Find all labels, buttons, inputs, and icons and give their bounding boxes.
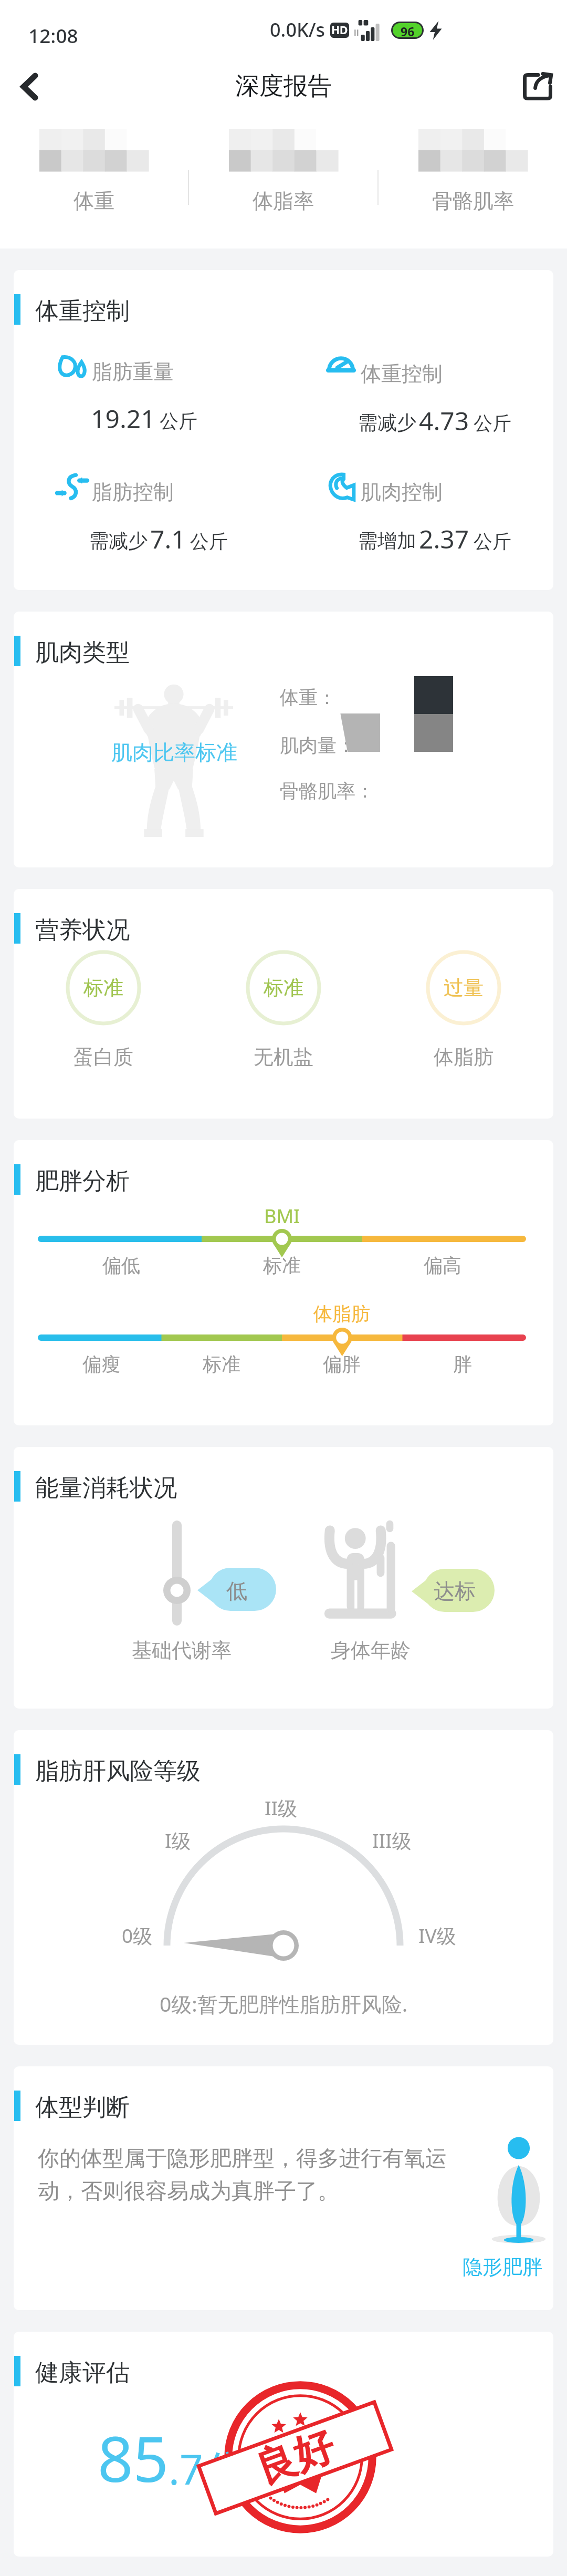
staticText: 需减少 — [358, 410, 416, 435]
staticText: 深度报告 — [235, 71, 332, 101]
button[interactable]: 体重 — [0, 116, 188, 249]
staticText: I级 — [165, 1827, 191, 1854]
button[interactable]: 过量 — [373, 950, 553, 1070]
button[interactable]: 骨骼肌率 — [379, 116, 567, 249]
staticText: 标准 — [264, 975, 303, 1000]
staticText: 健康评估 — [35, 2358, 130, 2388]
staticText: 4.73 — [419, 404, 469, 438]
staticText: 85 — [98, 2416, 169, 2500]
staticText: 你的体型属于隐形肥胖型，得多进行有氧运动，否则很容易成为真胖子了。 — [38, 2145, 458, 2205]
staticText: 12:08 — [28, 22, 78, 48]
staticText: 脂肪重量 — [92, 359, 174, 385]
staticText: 需增加 — [358, 529, 416, 553]
staticText: 体型判断 — [35, 2093, 130, 2123]
staticText: 低 — [226, 1578, 247, 1604]
staticText: 需减少 — [89, 529, 148, 553]
staticText: 标准 — [203, 1352, 240, 1376]
staticText: 隐形肥胖 — [463, 2254, 542, 2280]
staticText: 体脂肪 — [313, 1302, 370, 1326]
staticText: 肌肉类型 — [35, 638, 130, 668]
staticText: 能量消耗状况 — [35, 1473, 177, 1503]
staticText: 偏高 — [424, 1254, 461, 1277]
staticText: 无机盐 — [254, 1044, 313, 1070]
staticText: 胖 — [453, 1352, 472, 1376]
staticText: 体脂率 — [253, 188, 314, 214]
staticText: 偏瘦 — [82, 1352, 120, 1376]
staticText: 身体年龄 — [331, 1638, 411, 1663]
staticText: IV级 — [418, 1922, 456, 1949]
staticText: 体重： — [280, 686, 337, 709]
staticText: 肌肉控制 — [361, 479, 443, 505]
button[interactable]: 标准 — [193, 950, 373, 1070]
staticText: 体重控制 — [35, 296, 130, 326]
staticText: 7.1 — [150, 522, 186, 556]
staticText: 良好 — [249, 2420, 341, 2495]
staticText: 公斤 — [474, 530, 511, 553]
staticText: 偏胖 — [323, 1352, 361, 1376]
staticText: BMI — [264, 1203, 300, 1229]
staticText: 19.21 — [91, 401, 155, 436]
staticText: 标准 — [263, 1254, 301, 1277]
staticText: 脂肪控制 — [92, 479, 174, 505]
staticText: III级 — [372, 1827, 412, 1854]
button[interactable]: Back — [0, 58, 59, 116]
staticText: 骨骼肌率 — [432, 188, 514, 214]
staticText: 肌肉量： — [280, 733, 355, 757]
staticText: 公斤 — [160, 409, 197, 433]
staticText: 达标 — [434, 1578, 476, 1604]
staticText: 体重 — [73, 188, 114, 214]
staticText: 公斤 — [474, 411, 511, 435]
staticText: 过量 — [444, 975, 484, 1000]
staticText: 骨骼肌率： — [280, 779, 374, 803]
staticText: 2.37 — [419, 522, 469, 556]
staticText: 体脂肪 — [434, 1044, 493, 1070]
staticText: II级 — [265, 1794, 298, 1821]
staticText: HD — [331, 23, 348, 38]
staticText: 蛋白质 — [73, 1044, 133, 1070]
staticText: 肌肉比率标准 — [111, 739, 237, 765]
staticText: 营养状况 — [35, 915, 130, 945]
staticText: 体重控制 — [361, 361, 443, 387]
staticText: 脂肪肝风险等级 — [35, 1756, 201, 1786]
staticText: 基础代谢率 — [132, 1638, 232, 1663]
staticText: 偏低 — [102, 1254, 140, 1277]
staticText: 标准 — [83, 975, 123, 1000]
staticText: 0级 — [122, 1922, 153, 1949]
staticText: 肥胖分析 — [35, 1166, 130, 1196]
staticText: 公斤 — [190, 530, 228, 553]
button[interactable]: Share — [508, 58, 567, 116]
staticText: .7分 — [169, 2441, 244, 2497]
button[interactable]: 体脂率 — [189, 116, 377, 249]
staticText: 0级:暂无肥胖性脂肪肝风险. — [14, 1990, 553, 2018]
button[interactable]: 标准 — [14, 950, 193, 1070]
staticText: 0.0K/s — [270, 17, 325, 43]
staticText: 96 — [401, 23, 415, 37]
